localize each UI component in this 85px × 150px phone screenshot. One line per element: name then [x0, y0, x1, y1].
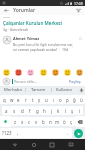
- staticText: ü: [80, 97, 83, 103]
- staticText: j: [51, 108, 53, 114]
- button[interactable]: Like: [78, 36, 82, 40]
- button[interactable]: Back: [10, 140, 19, 149]
- button[interactable]: ü: [78, 95, 85, 104]
- button[interactable]: ı: [50, 95, 57, 104]
- staticText: ne zaman yapılacak acaba? · 10d: [13, 47, 69, 52]
- staticText: m: [55, 119, 60, 125]
- button[interactable]: x: [19, 117, 26, 126]
- staticText: d: [21, 108, 24, 114]
- button[interactable]: Shift: [0, 116, 11, 127]
- button[interactable]: Home: [29, 140, 38, 149]
- staticText: n: [49, 119, 52, 125]
- staticText: Bu yeni kurul ile ilgili sorularımız var…: [13, 42, 76, 47]
- button[interactable]: s: [10, 106, 18, 115]
- staticText: z: [14, 119, 17, 125]
- button[interactable]: b: [40, 117, 47, 126]
- staticText: o: [59, 97, 62, 103]
- staticText: p: [66, 97, 69, 103]
- button[interactable]: k: [55, 106, 62, 115]
- button[interactable]: ğ: [71, 95, 78, 104]
- button[interactable]: Yorum ekle...: [14, 79, 68, 84]
- button[interactable]: Paylaş: [68, 79, 82, 84]
- staticText: Kullanıcı: [56, 87, 73, 93]
- button[interactable]: j: [48, 106, 55, 115]
- button[interactable]: Emoji: [51, 68, 59, 76]
- staticText: ı: [53, 97, 55, 103]
- button[interactable]: Recents: [47, 140, 56, 149]
- staticText: ğ: [73, 97, 76, 103]
- staticText: h: [43, 108, 46, 114]
- staticText: ,: [17, 130, 19, 136]
- button[interactable]: v: [33, 117, 40, 126]
- button[interactable]: ö: [61, 117, 68, 126]
- button[interactable]: Emoji: [63, 68, 71, 76]
- button[interactable]: o: [57, 95, 64, 104]
- button[interactable]: ,: [14, 128, 22, 138]
- button[interactable]: Emoji: [26, 68, 34, 76]
- button[interactable]: Ahmet Yılmaz: [3, 36, 82, 52]
- button[interactable]: Hide keyboard: [66, 140, 75, 149]
- button[interactable]: d: [18, 106, 26, 115]
- staticText: Yorum ekle...: [14, 79, 38, 84]
- staticText: ?123: [2, 130, 12, 136]
- staticText: Ahmet Yılmaz: [13, 36, 40, 41]
- button[interactable]: n: [47, 117, 54, 126]
- button[interactable]: e: [15, 95, 22, 104]
- button[interactable]: Emoji: [14, 68, 22, 76]
- button[interactable]: Voice input: [77, 86, 85, 94]
- button[interactable]: ş: [69, 106, 76, 115]
- button[interactable]: Backspace: [75, 116, 85, 127]
- button[interactable]: Çalışanlar Kurulun Merkezi: [3, 20, 82, 26]
- staticText: ö: [63, 119, 66, 125]
- staticText: 17:08: [74, 1, 83, 6]
- staticText: g: [36, 108, 39, 114]
- staticText: s: [13, 108, 16, 114]
- button[interactable]: Filter: [75, 7, 82, 14]
- staticText: .: [67, 130, 69, 136]
- button[interactable]: p: [64, 95, 71, 104]
- staticText: u: [45, 97, 48, 103]
- staticText: a: [5, 108, 8, 114]
- staticText: b: [42, 119, 45, 125]
- staticText: ş: [71, 108, 74, 114]
- button[interactable]: Back: [3, 7, 10, 14]
- button[interactable]: c: [26, 117, 33, 126]
- button[interactable]: Kullanıcı: [52, 86, 77, 94]
- staticText: q: [3, 97, 6, 103]
- staticText: Paylaş: [69, 79, 81, 84]
- staticText: e: [17, 97, 20, 103]
- button[interactable]: ?123: [0, 128, 14, 138]
- button[interactable]: ç: [68, 117, 75, 126]
- button[interactable]: h: [41, 106, 48, 115]
- staticText: Yorumlar: [13, 7, 75, 14]
- button[interactable]: a: [2, 106, 10, 115]
- button[interactable]: Emoji: [39, 68, 47, 76]
- staticText: i: [79, 108, 81, 114]
- button[interactable]: l: [62, 106, 69, 115]
- staticText: Tamam: [31, 87, 46, 93]
- button[interactable]: z: [11, 117, 19, 126]
- button[interactable]: f: [26, 106, 34, 115]
- button[interactable]: g: [34, 106, 41, 115]
- button[interactable]: i: [76, 106, 83, 115]
- staticText: f: [29, 108, 31, 114]
- staticText: w: [10, 97, 14, 103]
- staticText: y: [38, 97, 41, 103]
- staticText: Merhaba: [4, 87, 22, 93]
- button[interactable]: Emoji: [75, 68, 83, 76]
- button[interactable]: r: [22, 95, 29, 104]
- button[interactable]: Merhaba: [0, 86, 25, 94]
- button[interactable]: m: [54, 117, 61, 126]
- button[interactable]: t: [29, 95, 36, 104]
- button[interactable]: y: [36, 95, 43, 104]
- button[interactable]: u: [43, 95, 50, 104]
- staticText: v: [35, 119, 38, 125]
- staticText: c: [28, 119, 31, 125]
- button[interactable]: Send: [74, 129, 83, 138]
- button[interactable]: q: [0, 95, 8, 104]
- button[interactable]: w: [8, 95, 15, 104]
- button[interactable]: Emoji: [2, 68, 10, 76]
- button[interactable]: .: [64, 128, 72, 138]
- button[interactable]: Tamam: [26, 86, 51, 94]
